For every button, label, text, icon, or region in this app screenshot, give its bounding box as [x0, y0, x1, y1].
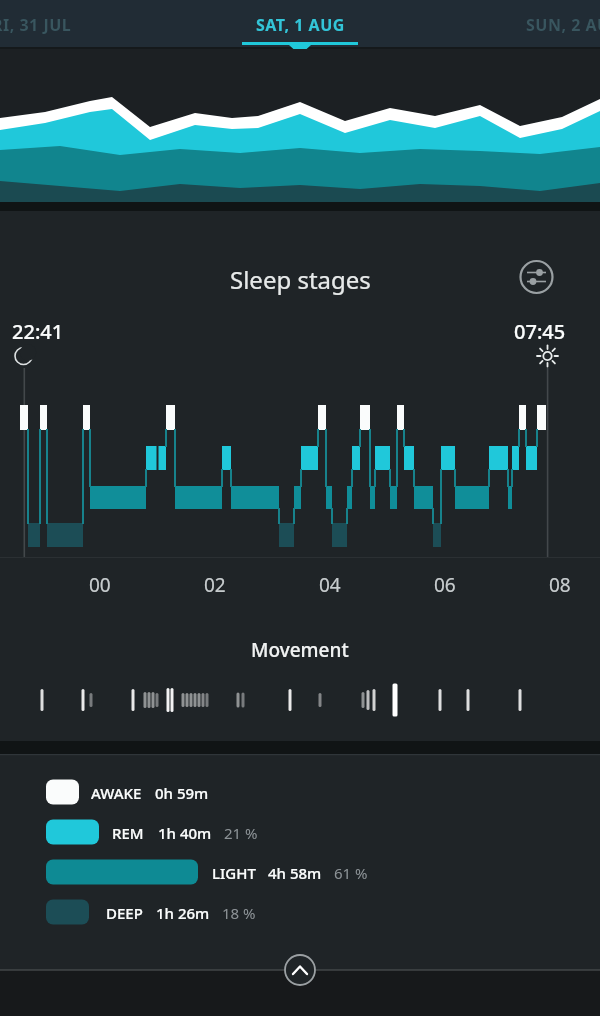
button[interactable] — [220, 0, 380, 48]
staticText: 18 % — [222, 903, 256, 923]
staticText: 1h 40m — [158, 823, 212, 843]
staticText: AWAKE — [91, 783, 142, 803]
staticText: Sleep stages — [230, 263, 371, 296]
staticText: Movement — [251, 637, 349, 663]
staticText: 22:41 — [12, 318, 64, 345]
staticText: 04 — [319, 572, 341, 598]
staticText: 06 — [434, 572, 456, 598]
staticText: RI, 31 JUL — [0, 14, 72, 36]
staticText: 07:45 — [514, 318, 566, 345]
staticText: 02 — [204, 572, 226, 598]
staticText: SUN, 2 AUG — [526, 14, 600, 36]
staticText: LIGHT — [212, 863, 256, 883]
button[interactable] — [281, 951, 319, 989]
staticText: 61 % — [334, 863, 368, 883]
staticText: 4h 58m — [268, 863, 322, 883]
staticText: DEEP — [106, 903, 143, 923]
button[interactable]: RI, 31 JUL — [0, 0, 160, 48]
staticText: 08 — [549, 572, 571, 598]
staticText: 21 % — [224, 823, 258, 843]
staticText: 0h 59m — [155, 783, 209, 803]
staticText: 1h 26m — [156, 903, 210, 923]
button[interactable]: SUN, 2 AUG — [440, 0, 600, 48]
staticText: 00 — [89, 572, 111, 598]
staticText: REM — [112, 823, 144, 843]
staticText: SAT, 1 AUG — [256, 14, 345, 36]
button[interactable] — [512, 253, 561, 302]
